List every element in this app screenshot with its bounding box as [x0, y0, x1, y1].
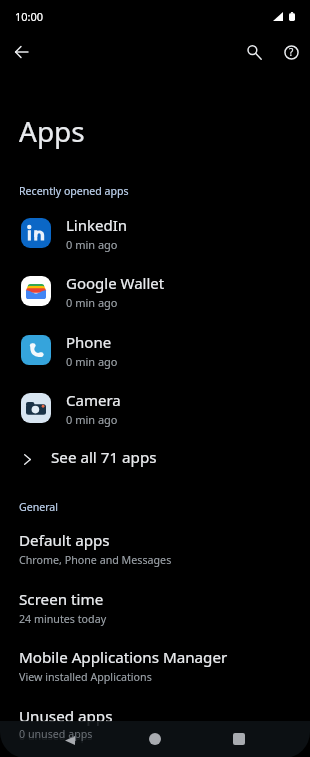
- staticText: LinkedIn: [66, 215, 128, 235]
- button[interactable]: Home: [143, 727, 167, 751]
- staticText: 24 minutes today: [19, 612, 107, 627]
- staticText: Google Wallet: [66, 273, 165, 293]
- button[interactable]: Phone: [0, 321, 310, 379]
- staticText: 0 unused apps: [19, 729, 93, 744]
- button[interactable]: LinkedIn: [0, 204, 310, 262]
- staticText: Screen time: [19, 589, 104, 610]
- button[interactable]: Screen time: [0, 579, 310, 637]
- button[interactable]: Back: [59, 726, 83, 750]
- button[interactable]: Google Wallet: [0, 262, 310, 320]
- button[interactable]: Back: [1, 32, 41, 72]
- staticText: 10:00: [15, 9, 44, 24]
- staticText: ?: [289, 45, 294, 59]
- staticText: Chrome, Phone and Messages: [19, 553, 172, 568]
- button[interactable]: See all 71 apps: [0, 434, 310, 480]
- staticText: 0 min ago: [66, 237, 118, 252]
- staticText: 0 min ago: [66, 295, 118, 310]
- staticText: See all 71 apps: [51, 447, 157, 468]
- staticText: View installed Applications: [19, 670, 152, 685]
- button[interactable]: Unused apps: [0, 696, 310, 754]
- staticText: Unused apps: [19, 706, 113, 727]
- staticText: Default apps: [19, 530, 110, 551]
- button[interactable]: Camera: [0, 379, 310, 437]
- staticText: Apps: [19, 112, 85, 150]
- button[interactable]: Help: [271, 32, 310, 72]
- button[interactable]: Default apps: [0, 520, 310, 578]
- staticText: General: [19, 500, 59, 514]
- staticText: Camera: [66, 390, 121, 410]
- button[interactable]: Mobile Applications Manager: [0, 637, 310, 695]
- staticText: 0 unused apps: [19, 727, 93, 742]
- staticText: Recently opened apps: [19, 184, 129, 198]
- button[interactable]: Search: [234, 32, 274, 72]
- button[interactable]: Recents: [227, 727, 251, 751]
- staticText: 0 min ago: [66, 354, 118, 369]
- staticText: Phone: [66, 332, 112, 352]
- staticText: Mobile Applications Manager: [19, 647, 228, 668]
- staticText: 0 min ago: [66, 412, 118, 427]
